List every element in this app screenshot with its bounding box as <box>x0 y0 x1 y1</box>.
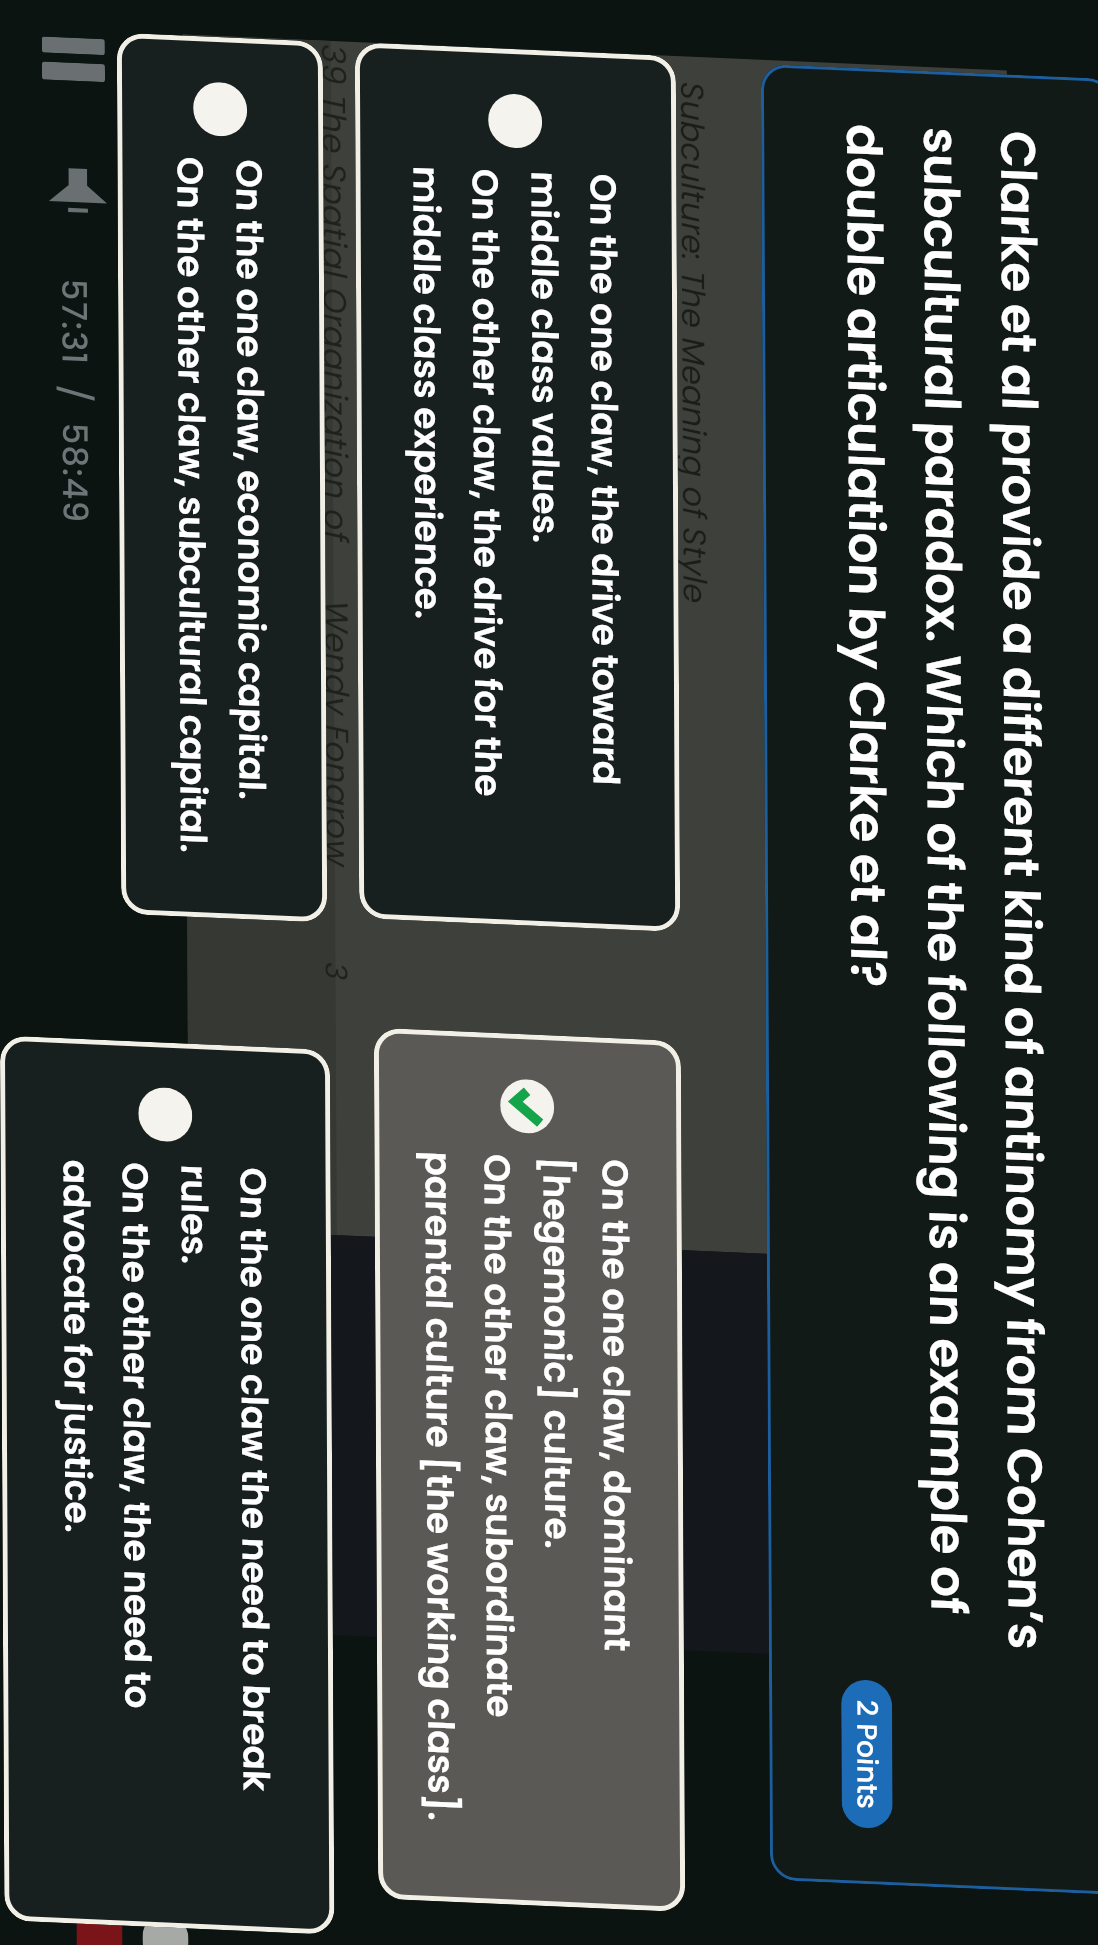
staticText: On the one claw, dominant [hegemonic] cu… <box>76 1037 982 1943</box>
staticText: 3 <box>305 941 365 1001</box>
other: Selected answer <box>473 1052 581 1160</box>
staticText: On the one claw the need to break rules.… <box>0 1045 597 1906</box>
staticText: Clarke et al provide a different kind of… <box>72 12 1098 1762</box>
staticText: 39 The Spatial Organization of Wendy Fon… <box>0 21 770 890</box>
staticText: 57:31 / 58:49 <box>0 255 221 548</box>
button[interactable]: Select answer <box>0 0 765 1021</box>
other: Select answer <box>166 55 274 163</box>
staticText: On the one claw, economic capital. On th… <box>0 99 630 914</box>
staticText: 2 Points <box>793 1680 941 1828</box>
other: Select answer <box>461 67 569 175</box>
staticText: On the one claw, the drive toward middle… <box>85 52 949 916</box>
button[interactable]: Selected answer <box>0 881 1098 1945</box>
button[interactable]: Volume <box>14 132 140 258</box>
staticText: Subculture: The Meaning of Style <box>410 59 977 626</box>
button[interactable]: Select answer <box>0 0 1098 1086</box>
button[interactable]: Select answer <box>0 877 775 1945</box>
button[interactable]: Pause <box>0 0 152 137</box>
other: Select answer <box>111 1061 219 1169</box>
button[interactable]: 2 Points <box>767 1654 966 1853</box>
button[interactable]: Clarke et al provide a different kind of… <box>0 0 1098 1945</box>
